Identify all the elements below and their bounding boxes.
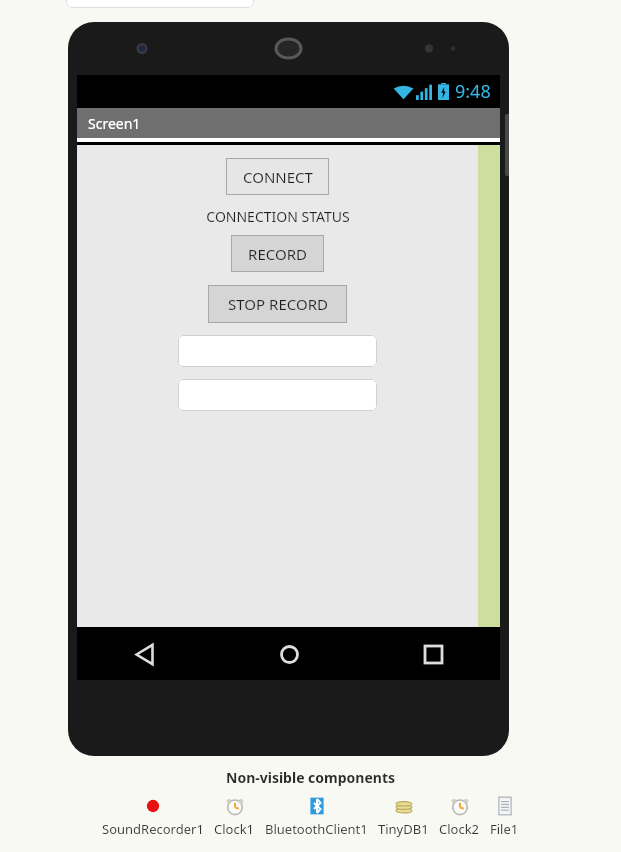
staticText: Screen1 — [88, 114, 141, 133]
button[interactable]: SoundRecorder1 — [102, 795, 204, 838]
staticText: 9:48 — [455, 79, 491, 104]
staticText: File1 — [490, 820, 519, 838]
staticText: RECORD — [248, 244, 307, 264]
staticText: BluetoothClient1 — [265, 820, 368, 838]
staticText: TinyDB1 — [378, 820, 429, 838]
staticText: STOP RECORD — [228, 294, 328, 314]
button[interactable]: Back — [121, 631, 167, 677]
button[interactable]: CONNECT — [226, 158, 329, 195]
button[interactable]: RECORD — [231, 235, 324, 272]
staticText: CONNECT — [243, 167, 313, 187]
staticText: Clock2 — [439, 820, 480, 838]
button[interactable]: Clock1 — [214, 795, 255, 838]
button[interactable]: STOP RECORD — [208, 285, 347, 323]
button[interactable] — [178, 335, 377, 367]
button[interactable]: Clock2 — [439, 795, 480, 838]
button[interactable]: Recent apps — [410, 631, 456, 677]
button[interactable]: BluetoothClient1 — [265, 795, 368, 838]
staticText: Non-visible components — [226, 768, 396, 787]
button[interactable]: Home — [266, 631, 312, 677]
button[interactable]: File1 — [490, 795, 519, 838]
button[interactable]: TinyDB1 — [378, 795, 429, 838]
button[interactable] — [178, 379, 377, 411]
staticText: Clock1 — [214, 820, 255, 838]
staticText: CONNECTION STATUS — [206, 207, 350, 226]
staticText: SoundRecorder1 — [102, 820, 204, 838]
